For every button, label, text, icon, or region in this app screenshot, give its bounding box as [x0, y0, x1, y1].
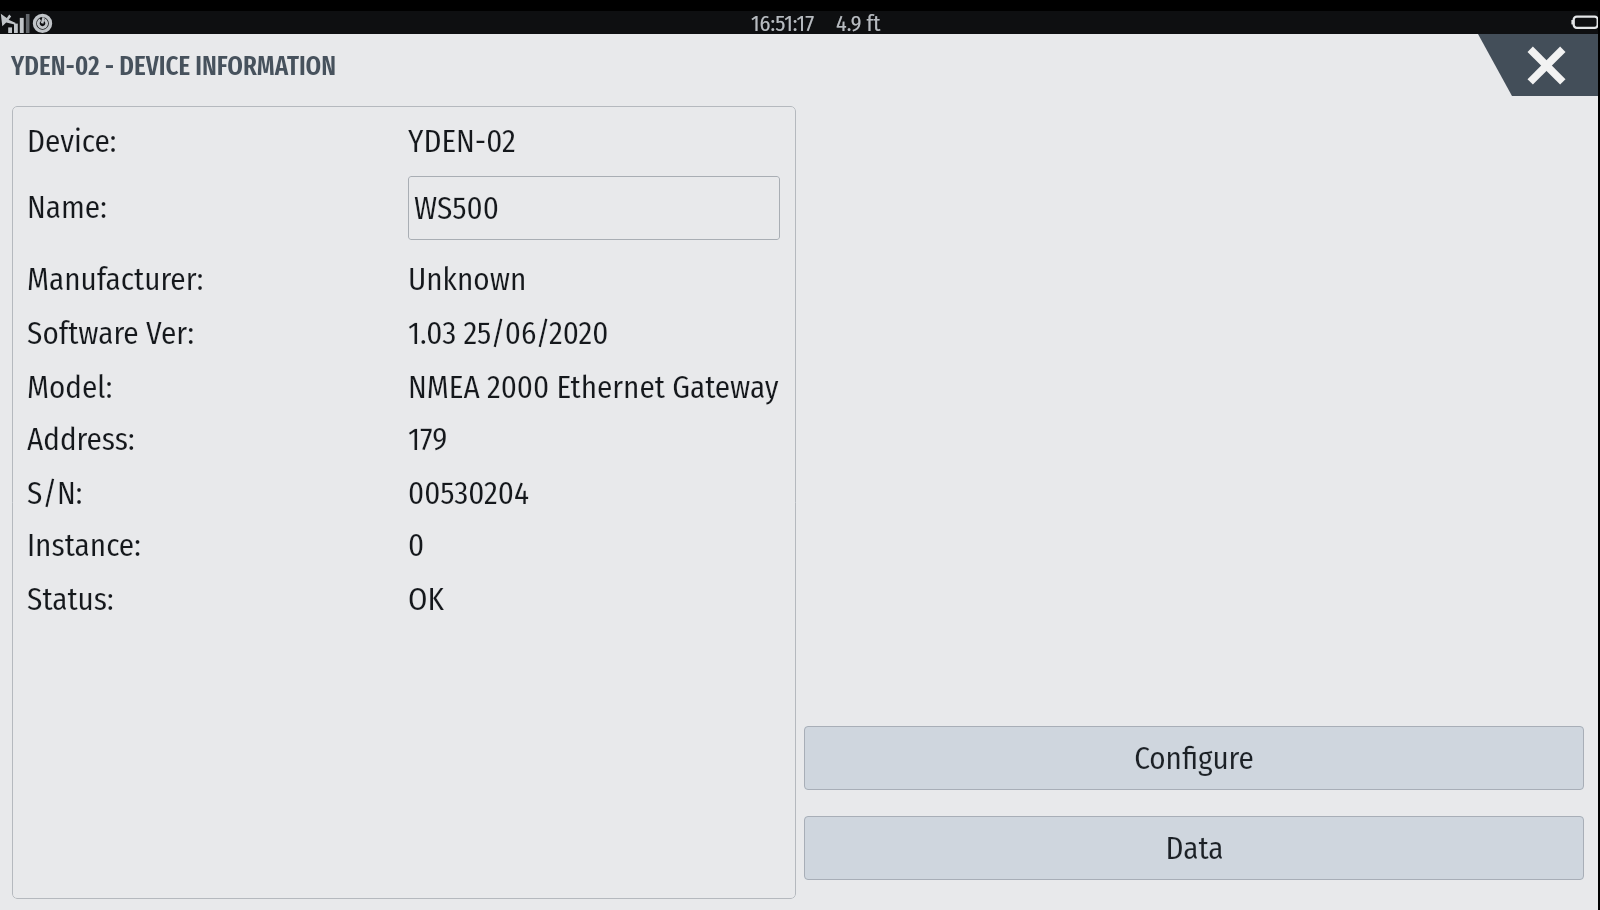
- staticText: Model:: [27, 369, 113, 406]
- staticText: YDEN-02 - DEVICE INFORMATION: [11, 50, 337, 82]
- staticText: Data: [1165, 830, 1224, 867]
- staticText: Instance:: [27, 527, 141, 564]
- staticText: YDEN-02: [408, 123, 516, 160]
- staticText: Name:: [27, 189, 107, 226]
- staticText: Device:: [27, 123, 117, 160]
- staticText: 0: [408, 527, 425, 564]
- staticText: Configure: [1134, 740, 1254, 777]
- staticText: 1.03 25/06/2020: [408, 315, 609, 352]
- button[interactable]: Data: [804, 816, 1584, 880]
- staticText: 00530204: [408, 475, 529, 512]
- staticText: WS500: [414, 190, 499, 227]
- button[interactable]: Close: [1470, 34, 1600, 96]
- staticText: OK: [408, 581, 444, 618]
- staticText: Address:: [27, 421, 135, 458]
- staticText: Software Ver:: [27, 315, 194, 352]
- staticText: 179: [408, 421, 448, 458]
- staticText: Unknown: [408, 261, 527, 298]
- button[interactable]: Configure: [804, 726, 1584, 790]
- staticText: Status:: [27, 581, 114, 618]
- staticText: NMEA 2000 Ethernet Gateway: [408, 369, 779, 406]
- button[interactable]: WS500: [408, 176, 780, 240]
- staticText: S/N:: [27, 475, 83, 512]
- staticText: 16:51:17: [751, 10, 815, 36]
- staticText: Manufacturer:: [27, 261, 204, 298]
- staticText: 4.9 ft: [836, 10, 881, 36]
